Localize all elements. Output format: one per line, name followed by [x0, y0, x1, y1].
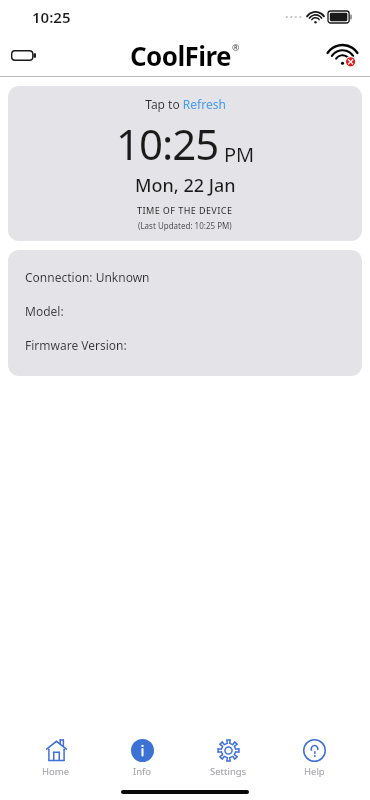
- staticText: ®: [232, 41, 240, 53]
- staticText: Tap to Refresh: [145, 96, 226, 112]
- button[interactable]: Help: [276, 735, 352, 782]
- button[interactable]: Tap to Refresh: [8, 86, 362, 241]
- staticText: PM: [224, 141, 255, 168]
- button[interactable]: Wi-Fi disconnected: [327, 40, 357, 70]
- staticText: 10:25: [32, 7, 71, 27]
- staticText: Firmware Version:: [25, 337, 127, 353]
- button[interactable]: Settings: [190, 735, 266, 782]
- button[interactable]: Info: [104, 735, 180, 782]
- staticText: TIME OF THE DEVICE: [137, 204, 233, 216]
- staticText: Mon, 22 Jan: [135, 173, 236, 198]
- staticText: (Last Updated: 10:25 PM): [138, 220, 232, 231]
- staticText: 10:25: [116, 115, 219, 172]
- staticText: Help: [304, 765, 325, 778]
- staticText: Info: [133, 765, 152, 778]
- button[interactable]: Home: [18, 735, 94, 782]
- staticText: Connection: Unknown: [25, 269, 150, 285]
- staticText: CoolFire: [130, 38, 231, 73]
- staticText: Settings: [210, 765, 247, 778]
- staticText: Home: [42, 765, 70, 778]
- staticText: Model:: [25, 303, 64, 319]
